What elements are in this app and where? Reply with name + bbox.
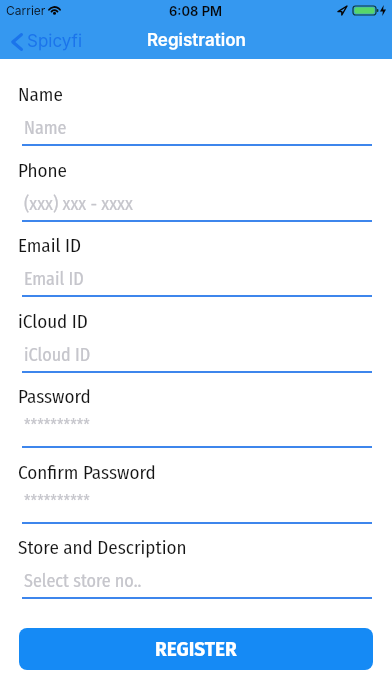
staticText: 6:08 PM xyxy=(169,3,223,19)
staticText: Registration xyxy=(147,30,246,51)
staticText: Select store no.. xyxy=(24,570,142,592)
button[interactable]: Email ID xyxy=(22,263,372,297)
button[interactable]: ********** xyxy=(22,414,372,448)
button[interactable]: Name xyxy=(22,112,372,146)
staticText: (xxx) xxx - xxxx xyxy=(24,193,133,215)
staticText: iCloud ID xyxy=(18,310,88,333)
button[interactable]: (xxx) xxx - xxxx xyxy=(22,188,372,222)
staticText: Phone xyxy=(18,159,67,182)
staticText: Store and Description xyxy=(18,536,187,559)
staticText: Email ID xyxy=(24,268,84,290)
staticText: ********** xyxy=(24,416,90,435)
staticText: Name xyxy=(24,117,67,139)
staticText: Carrier xyxy=(6,3,46,18)
staticText: Confirm Password xyxy=(18,461,156,484)
button[interactable]: iCloud ID xyxy=(22,339,372,373)
staticText: ********** xyxy=(24,492,90,511)
button[interactable]: Select store no.. xyxy=(22,565,372,599)
button[interactable]: REGISTER xyxy=(19,628,373,670)
staticText: iCloud ID xyxy=(24,344,91,366)
button[interactable]: Spicyfi xyxy=(4,24,90,56)
button[interactable]: ********** xyxy=(22,490,372,524)
staticText: Spicyfi xyxy=(27,31,83,52)
staticText: Name xyxy=(18,83,63,106)
staticText: Email ID xyxy=(18,234,81,257)
staticText: Password xyxy=(18,385,91,408)
staticText: REGISTER xyxy=(155,638,237,661)
